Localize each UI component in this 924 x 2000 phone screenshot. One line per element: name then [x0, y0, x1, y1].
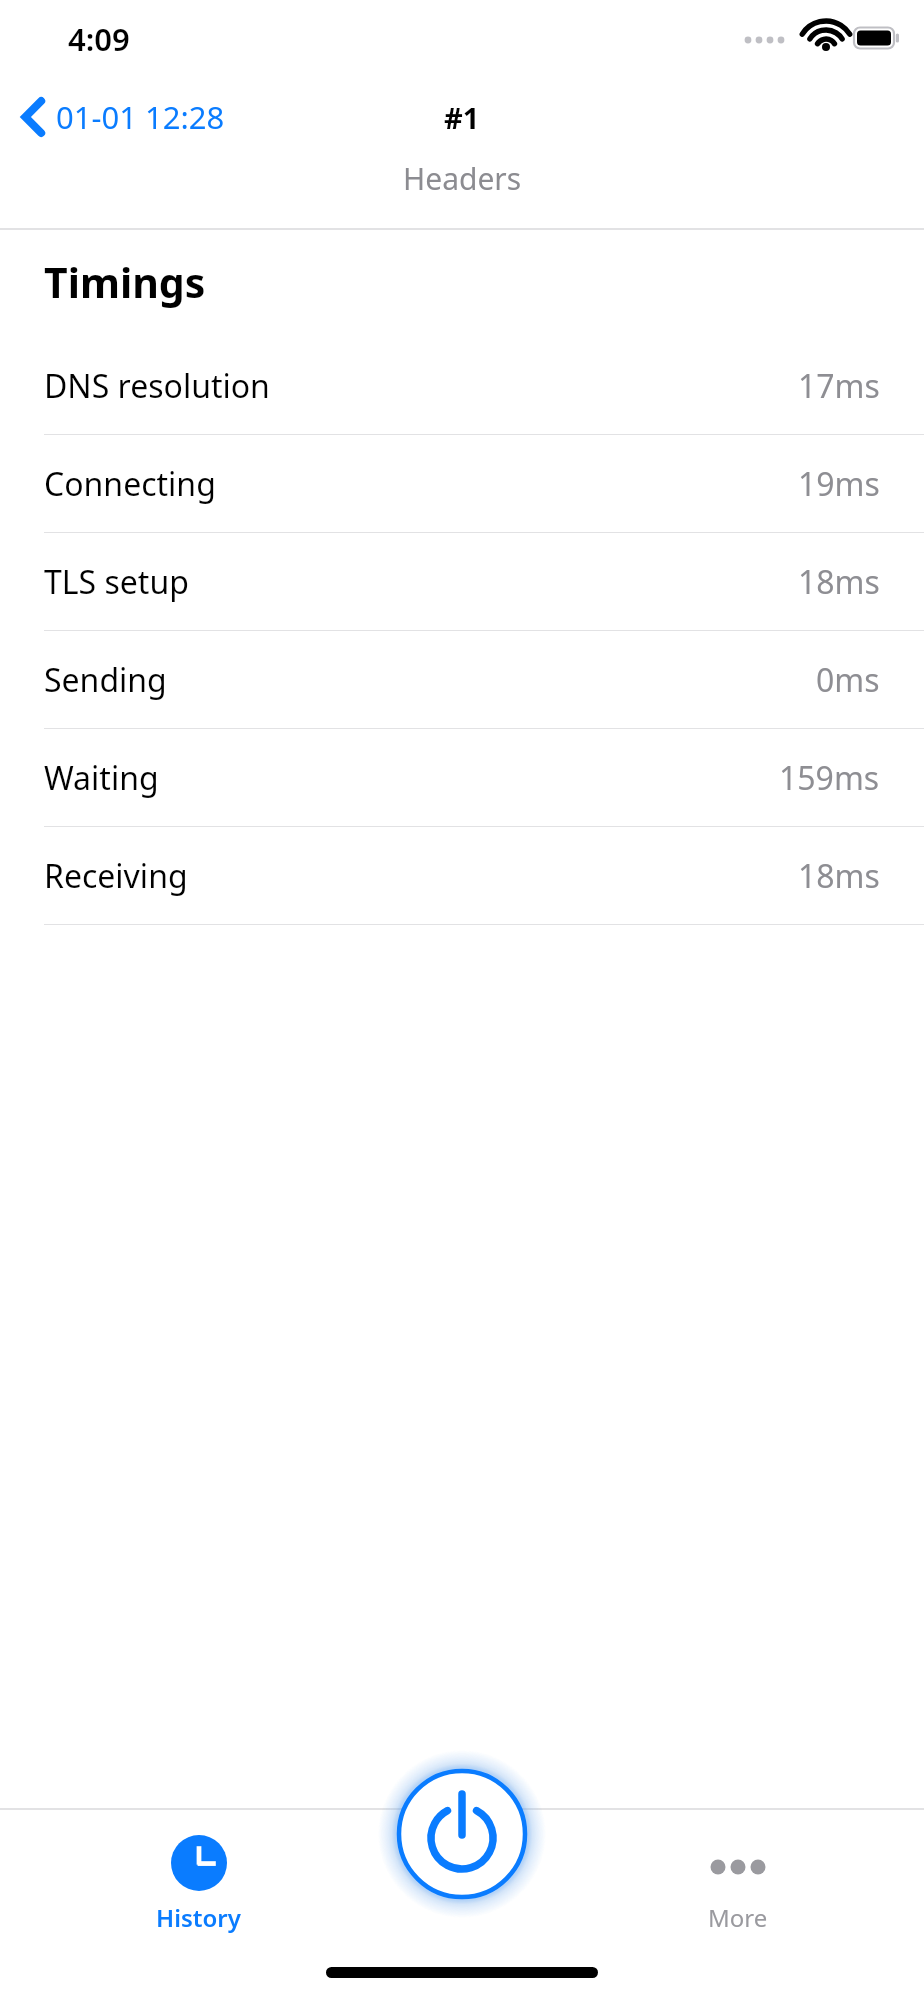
button[interactable]: DNS resolution: [0, 337, 924, 435]
staticText: 159ms: [779, 756, 880, 800]
staticText: Timings: [44, 254, 206, 310]
button[interactable]: Connecting: [0, 435, 924, 533]
staticText: 19ms: [798, 462, 880, 506]
staticText: Waiting: [44, 756, 159, 800]
staticText: History: [156, 1901, 241, 1934]
staticText: 0ms: [816, 658, 880, 702]
staticText: 18ms: [798, 854, 880, 898]
button[interactable]: Receiving: [0, 827, 924, 925]
staticText: Connecting: [44, 462, 216, 506]
staticText: Sending: [44, 658, 167, 702]
button[interactable]: Headers: [34, 158, 890, 226]
staticText: Receiving: [44, 854, 188, 898]
button[interactable]: Waiting: [0, 729, 924, 827]
button[interactable]: 01-01 12:28: [0, 86, 241, 148]
staticText: 18ms: [798, 560, 880, 604]
button[interactable]: History: [128, 1827, 269, 1942]
staticText: TLS setup: [44, 560, 189, 604]
button[interactable]: TLS setup: [0, 533, 924, 631]
staticText: 17ms: [798, 364, 880, 408]
staticText: More: [708, 1901, 768, 1934]
button[interactable]: Power: [378, 1750, 546, 1918]
staticText: Headers: [403, 158, 522, 199]
staticText: DNS resolution: [44, 364, 270, 408]
button[interactable]: Sending: [0, 631, 924, 729]
staticText: #1: [444, 98, 480, 137]
staticText: 01-01 12:28: [56, 96, 225, 138]
button[interactable]: More: [680, 1827, 796, 1942]
staticText: 4:09: [68, 18, 130, 60]
